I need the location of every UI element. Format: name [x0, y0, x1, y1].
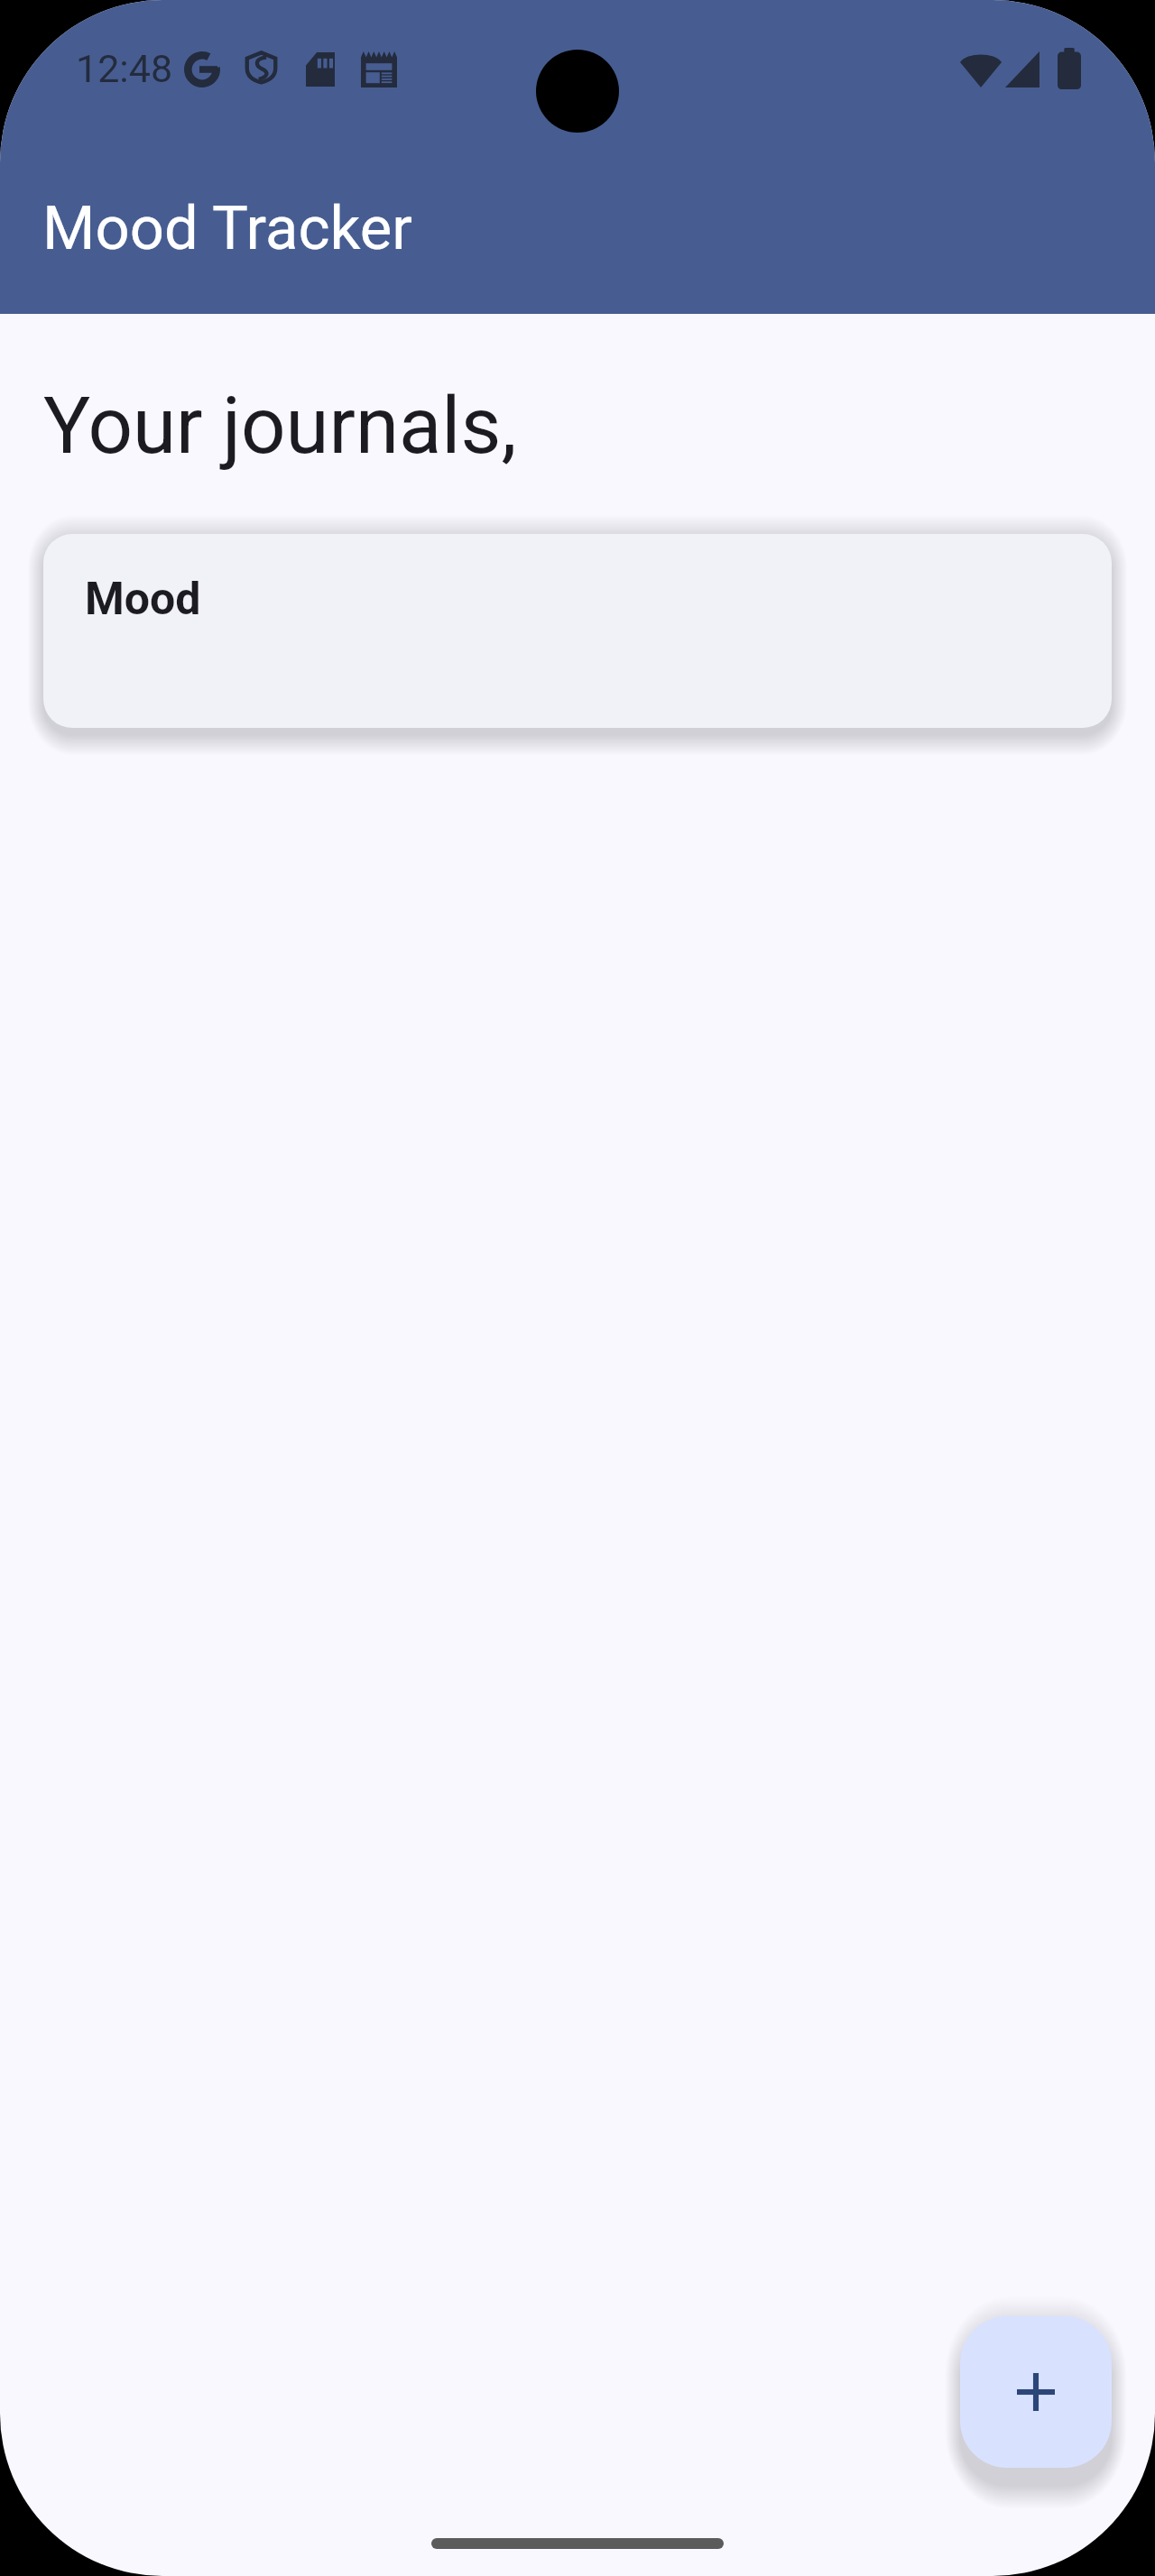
staticText: Mood	[85, 573, 201, 626]
staticText: Your journals,	[43, 380, 517, 472]
button[interactable]: Mood	[43, 534, 1112, 728]
staticText: 12:48	[76, 46, 173, 91]
button[interactable]: Add journal	[960, 2316, 1112, 2468]
staticText: Mood Tracker	[42, 193, 412, 264]
